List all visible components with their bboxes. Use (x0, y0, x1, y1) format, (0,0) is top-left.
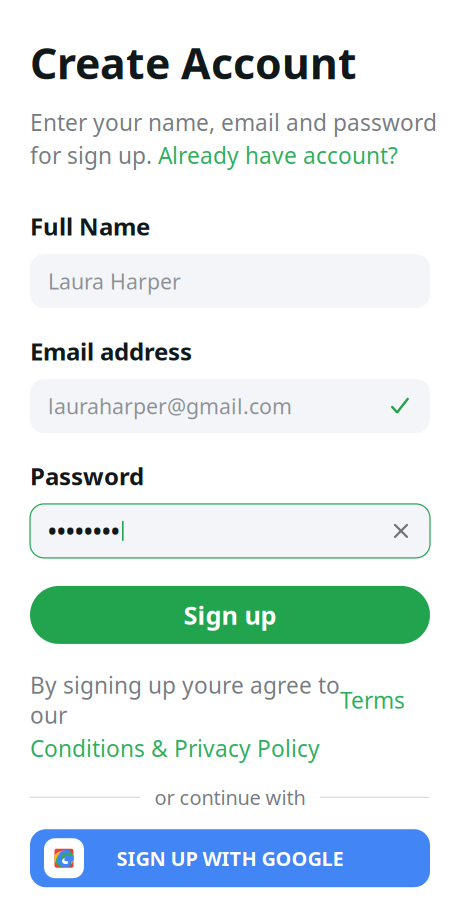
staticText: SIGN UP WITH GOOGLE (116, 845, 343, 871)
staticText: Email address (30, 335, 192, 367)
staticText: Password (30, 460, 144, 492)
button[interactable]: G (30, 829, 430, 887)
staticText: By signing up youre agree to our (30, 670, 340, 730)
staticText: Laura Harper (48, 267, 181, 295)
staticText: Conditions & Privacy Policy (30, 733, 320, 763)
staticText: Terms (340, 685, 405, 715)
button[interactable]: Sign up (30, 586, 430, 644)
button[interactable]: Terms (340, 685, 405, 715)
staticText: Sign up (183, 598, 276, 632)
button[interactable]: Laura Harper (30, 254, 430, 308)
staticText: lauraharper@gmail.com (48, 392, 292, 420)
staticText: Create Account (30, 34, 357, 91)
staticText: Enter your name, email and password (30, 107, 437, 137)
staticText: G (56, 843, 72, 873)
staticText: Full Name (30, 210, 150, 242)
staticText: Already have account? (158, 140, 398, 170)
staticText: or continue with (154, 784, 305, 810)
button[interactable]: •••••••• (30, 504, 430, 558)
button[interactable]: Conditions & Privacy Policy (30, 733, 320, 763)
staticText: •••••••• (48, 516, 120, 546)
button[interactable]: Already have account? (158, 140, 398, 170)
button[interactable]: lauraharper@gmail.com (30, 379, 430, 433)
staticText: for sign up. (30, 140, 158, 170)
